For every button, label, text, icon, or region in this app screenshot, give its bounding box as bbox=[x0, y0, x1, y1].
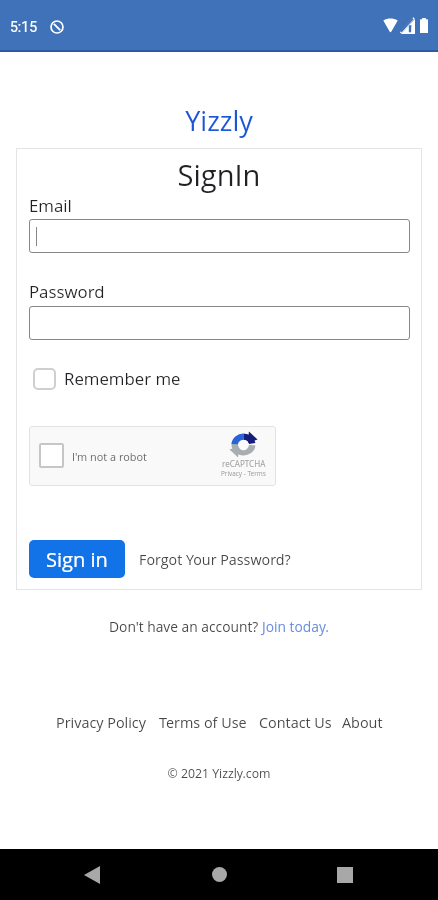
button[interactable]: Recent apps bbox=[319, 849, 371, 900]
staticText: Password bbox=[29, 280, 105, 303]
button[interactable]: Privacy Policy bbox=[56, 713, 146, 733]
button[interactable]: Forgot Your Password? bbox=[139, 550, 291, 569]
staticText: Contact Us bbox=[259, 713, 332, 733]
staticText: reCAPTCHA bbox=[222, 458, 266, 469]
button[interactable]: About bbox=[342, 713, 383, 733]
button[interactable]: Join today. bbox=[262, 617, 329, 636]
staticText: Privacy Policy bbox=[56, 713, 146, 733]
button[interactable] bbox=[29, 219, 410, 253]
staticText: Email bbox=[29, 194, 72, 217]
staticText: Don't have an account? bbox=[109, 617, 262, 636]
button[interactable]: Sign in bbox=[29, 540, 125, 578]
staticText: Yizzly bbox=[0, 102, 438, 139]
staticText: Sign in bbox=[46, 546, 108, 573]
staticText: Privacy - Terms bbox=[221, 469, 266, 478]
button[interactable]: Remember me bbox=[33, 367, 181, 390]
button[interactable]: Back bbox=[66, 849, 118, 900]
button[interactable] bbox=[29, 306, 410, 340]
staticText: 5:15 bbox=[10, 19, 37, 35]
staticText: Remember me bbox=[64, 367, 181, 390]
button[interactable]: Terms of Use bbox=[159, 713, 247, 733]
staticText: SignIn bbox=[16, 155, 422, 194]
staticText: Terms of Use bbox=[159, 713, 247, 733]
staticText: About bbox=[342, 713, 383, 733]
staticText: © 2021 Yizzly.com bbox=[0, 765, 438, 782]
staticText: I'm not a robot bbox=[72, 449, 147, 464]
button[interactable]: I'm not a robot bbox=[29, 426, 276, 486]
button[interactable]: Contact Us bbox=[259, 713, 332, 733]
button[interactable]: Home bbox=[193, 849, 245, 900]
